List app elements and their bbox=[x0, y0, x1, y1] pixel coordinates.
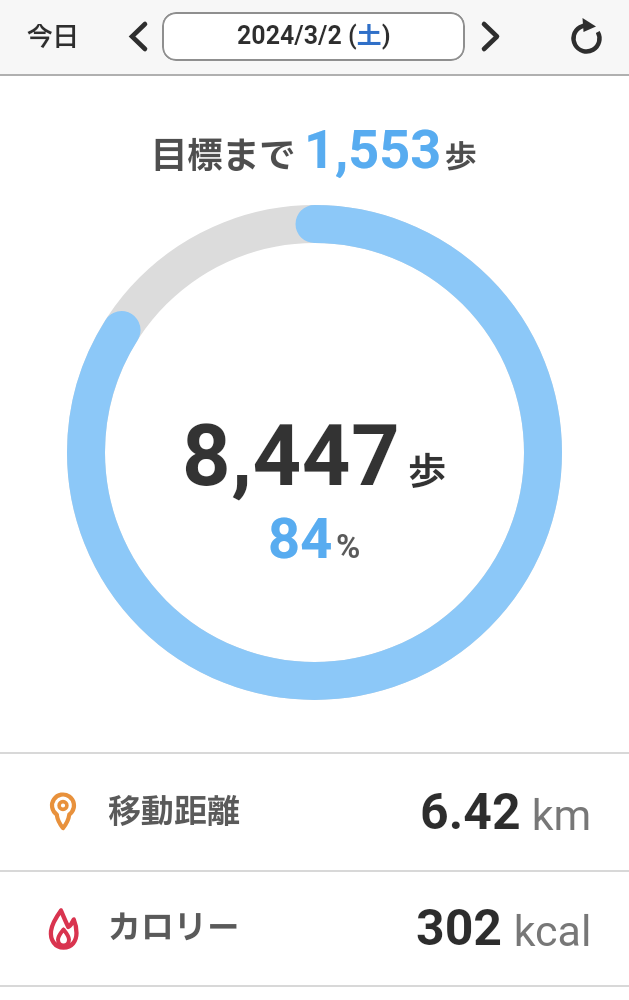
staticText: 8,447 bbox=[182, 406, 401, 506]
staticText: kcal bbox=[503, 906, 592, 956]
staticText: 302 bbox=[416, 899, 503, 958]
button[interactable] bbox=[476, 16, 506, 58]
staticText: % bbox=[336, 527, 361, 566]
staticText: 今日 bbox=[27, 18, 80, 57]
staticText: 移動距離 bbox=[108, 788, 240, 837]
staticText: km bbox=[521, 790, 592, 840]
staticText: 1,553 bbox=[304, 118, 442, 181]
button[interactable]: 移動距離 bbox=[0, 754, 629, 870]
button[interactable]: 今日 bbox=[27, 18, 80, 57]
staticText: 歩 bbox=[445, 134, 478, 182]
staticText: カロリー bbox=[108, 904, 240, 953]
button[interactable] bbox=[123, 16, 153, 58]
button[interactable]: 2024/3/2 (土) bbox=[162, 12, 465, 61]
button[interactable]: カロリー bbox=[0, 872, 629, 985]
staticText: 6.42 bbox=[420, 783, 521, 842]
staticText: 歩 bbox=[408, 445, 447, 502]
staticText: 目標まで bbox=[151, 130, 304, 184]
button[interactable] bbox=[564, 11, 610, 63]
staticText: 2024/3/2 (土) bbox=[237, 18, 391, 55]
staticText: 84 bbox=[268, 506, 333, 572]
